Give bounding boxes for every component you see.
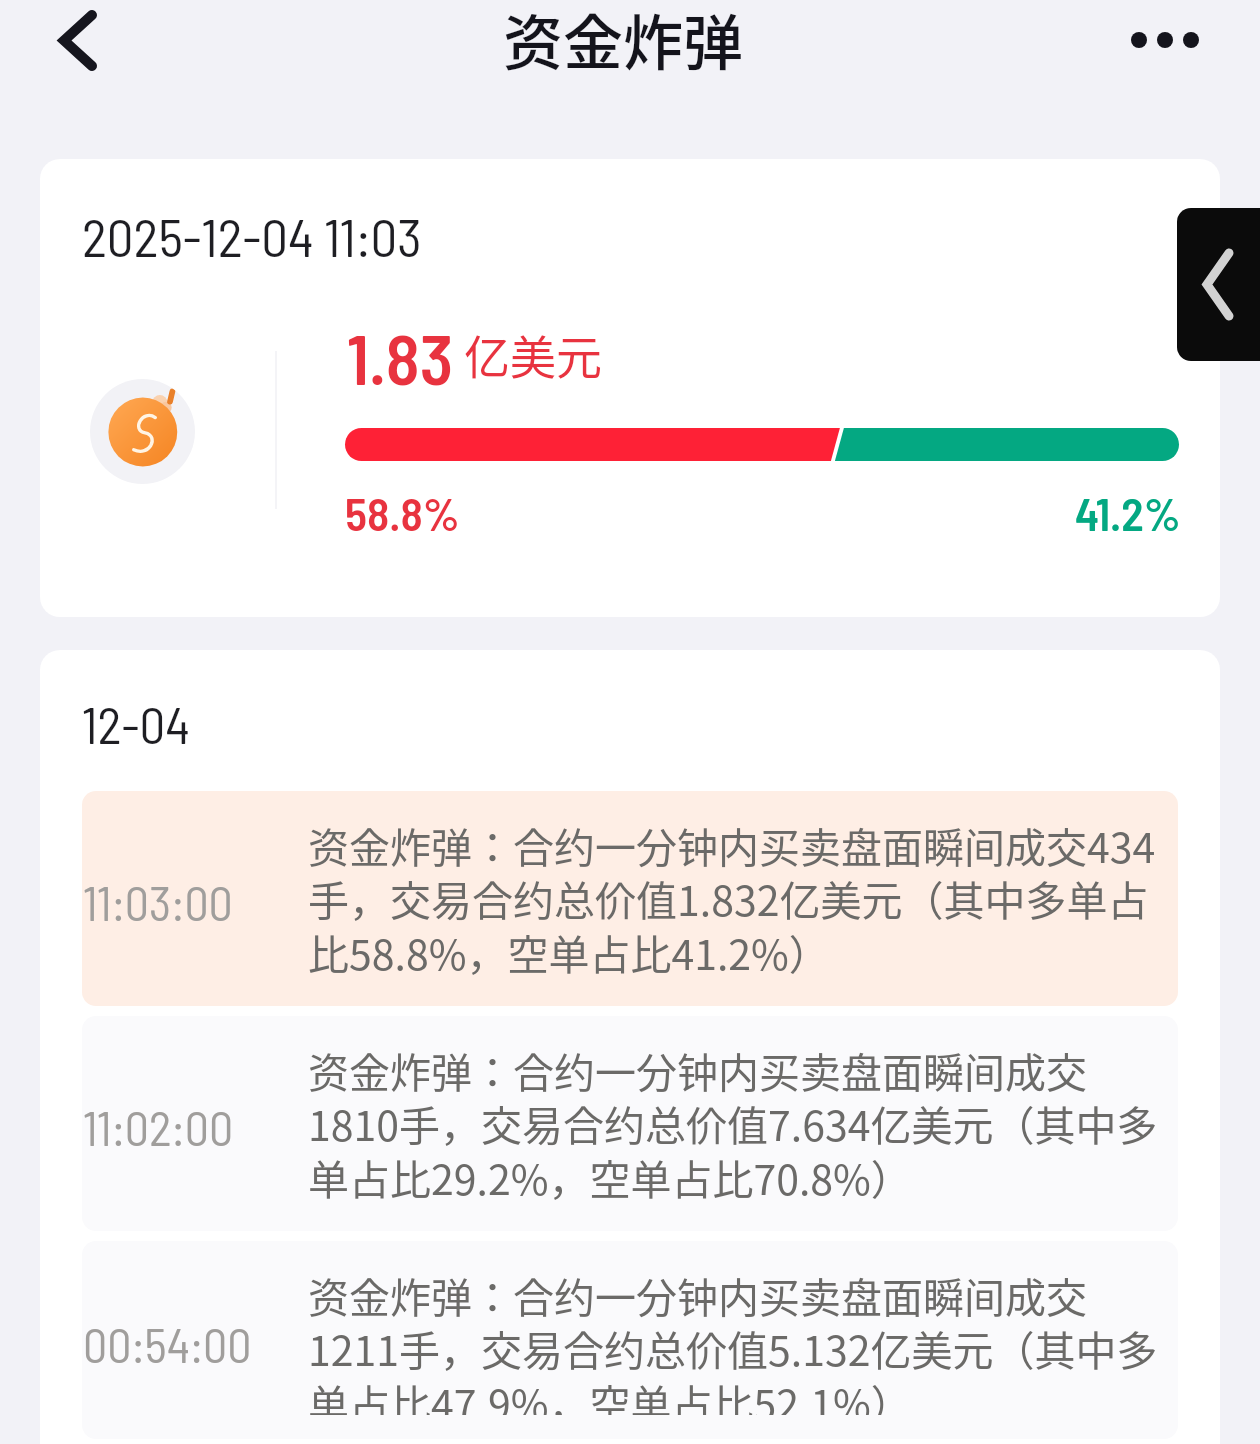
- staticText: 41.2%: [1075, 485, 1181, 540]
- button[interactable]: Back: [24, 0, 132, 80]
- staticText: 58.8%: [345, 485, 460, 540]
- button[interactable]: 11:03:00: [82, 791, 1178, 1006]
- staticText: 1.83: [347, 315, 454, 399]
- staticText: 11:03:00: [83, 873, 308, 931]
- staticText: 资金炸弹：合约一分钟内买卖盘面瞬间成交434手，交易合约总价值1.832亿美元（…: [308, 815, 1161, 982]
- button[interactable]: Expand side panel: [1177, 208, 1260, 361]
- staticText: 00:54:00: [83, 1315, 308, 1373]
- staticText: 资金炸弹：合约一分钟内买卖盘面瞬间成交1810手，交易合约总价值7.634亿美元…: [308, 1040, 1161, 1207]
- button[interactable]: 00:54:00: [82, 1241, 1178, 1439]
- staticText: 12-04: [82, 693, 190, 754]
- staticText: 2025-12-04 11:03: [82, 204, 422, 268]
- staticText: 资金炸弹: [503, 0, 743, 82]
- staticText: 亿美元: [464, 321, 602, 388]
- button[interactable]: More options: [1108, 0, 1222, 80]
- staticText: 资金炸弹：合约一分钟内买卖盘面瞬间成交1211手，交易合约总价值5.132亿美元…: [308, 1265, 1161, 1415]
- button[interactable]: 11:02:00: [82, 1016, 1178, 1231]
- staticText: 11:02:00: [83, 1098, 308, 1156]
